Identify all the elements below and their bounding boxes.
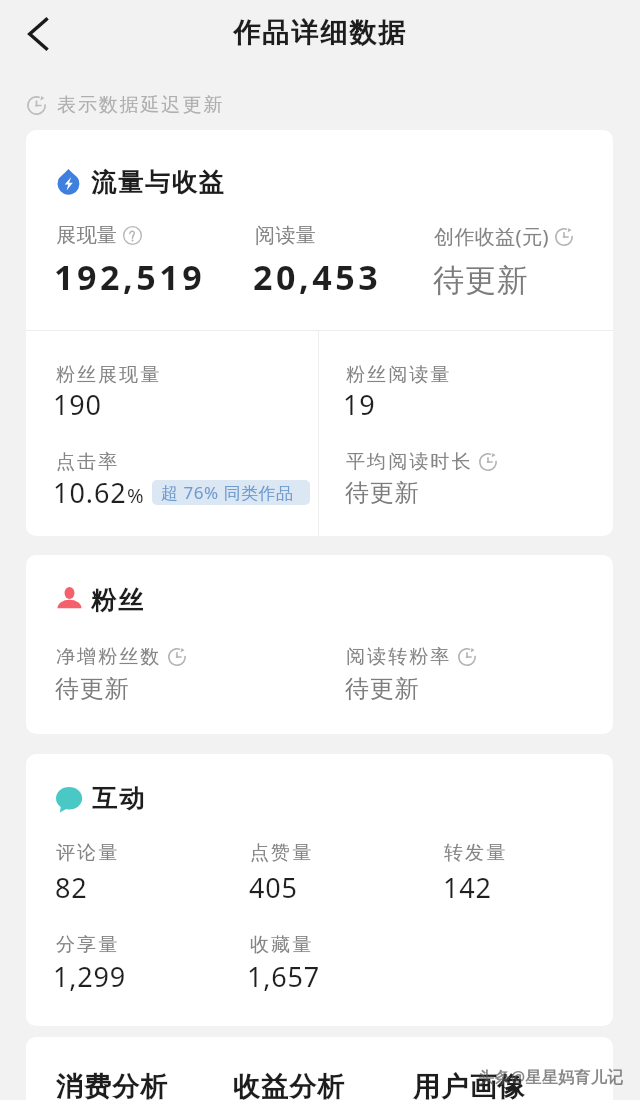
staticText: 收藏量 (250, 933, 314, 957)
staticText: 粉丝展现量 (56, 363, 162, 387)
staticText: 点赞量 (250, 841, 314, 865)
staticText: 粉丝 (91, 585, 145, 616)
staticText: 收益分析 (233, 1070, 346, 1100)
staticText: 转发量 (444, 841, 508, 865)
staticText: 净增粉丝数 (56, 645, 162, 669)
staticText: 1,657 (247, 958, 321, 995)
staticText: 分享量 (56, 933, 120, 957)
staticText: 超 76% 同类作品 (161, 481, 294, 504)
staticText: 作品详细数据 (233, 16, 408, 50)
staticText: 粉丝阅读量 (346, 363, 452, 387)
staticText: 阅读转粉率 (346, 645, 452, 669)
staticText: 1,299 (53, 958, 127, 995)
staticText: 用户画像 (413, 1070, 526, 1100)
staticText: % (127, 482, 144, 509)
staticText: 点击率 (56, 450, 120, 474)
staticText: 创作收益(元) (434, 223, 549, 250)
staticText: 互动 (92, 783, 146, 814)
button[interactable]: Back (14, 10, 62, 58)
button[interactable]: 收益分析 (225, 1063, 395, 1100)
staticText: 82 (55, 869, 88, 906)
staticText: 平均阅读时长 (346, 450, 473, 474)
staticText: 10.62 (53, 474, 127, 511)
staticText: 流量与收益 (91, 167, 226, 198)
button[interactable]: 消费分析 (48, 1063, 218, 1100)
staticText: 19 (343, 386, 376, 423)
staticText: 阅读量 (255, 223, 317, 248)
staticText: 待更新 (345, 478, 420, 508)
staticText: 192,519 (54, 254, 206, 300)
staticText: 待更新 (55, 674, 130, 704)
staticText: 142 (443, 869, 492, 906)
staticText: 评论量 (56, 841, 120, 865)
staticText: 消费分析 (56, 1070, 169, 1100)
staticText: 头条@星星妈育儿记 (478, 1066, 624, 1088)
staticText: 190 (53, 386, 102, 423)
staticText: 待更新 (433, 261, 529, 300)
staticText: 表示数据延迟更新 (57, 93, 225, 117)
staticText: 待更新 (345, 674, 420, 704)
staticText: 展现量 (56, 223, 118, 248)
button[interactable]: 用户画像 (405, 1063, 575, 1100)
staticText: 20,453 (253, 254, 382, 300)
staticText: 405 (249, 869, 298, 906)
